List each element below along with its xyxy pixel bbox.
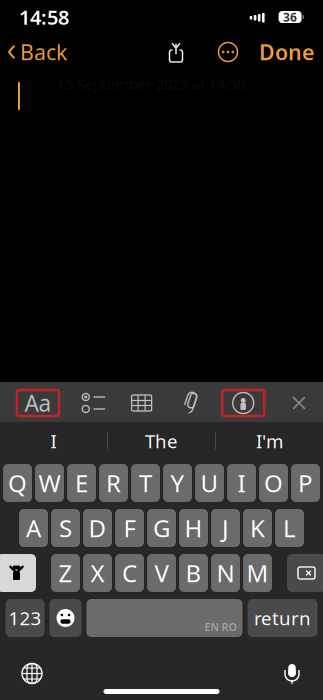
button[interactable]: Share bbox=[157, 36, 195, 68]
staticText: Done bbox=[259, 38, 314, 66]
button[interactable]: B bbox=[179, 554, 208, 592]
staticText: H bbox=[184, 512, 202, 544]
button[interactable]: Q bbox=[3, 464, 32, 502]
button[interactable]: Y bbox=[163, 464, 192, 502]
button[interactable]: Z bbox=[51, 554, 80, 592]
button[interactable]: Done bbox=[259, 30, 323, 74]
button[interactable]: return bbox=[247, 599, 317, 637]
button[interactable]: Table bbox=[129, 391, 155, 415]
button[interactable]: H bbox=[179, 509, 208, 547]
staticText: K bbox=[250, 512, 265, 544]
staticText: I bbox=[237, 467, 245, 499]
staticText: return bbox=[254, 606, 311, 630]
button[interactable]: Emoji bbox=[49, 599, 81, 637]
staticText: G bbox=[153, 512, 170, 544]
staticText: N bbox=[216, 557, 234, 589]
button[interactable]: K bbox=[243, 509, 272, 547]
button[interactable]: V bbox=[147, 554, 176, 592]
staticText: 14:58 bbox=[19, 4, 69, 30]
button[interactable]: T bbox=[131, 464, 160, 502]
button[interactable]: G bbox=[147, 509, 176, 547]
button[interactable]: N bbox=[211, 554, 240, 592]
button[interactable]: L bbox=[275, 509, 304, 547]
button[interactable]: S bbox=[51, 509, 80, 547]
button[interactable]: Space bbox=[86, 599, 242, 637]
button[interactable]: Shift bbox=[0, 554, 36, 592]
staticText: P bbox=[298, 467, 313, 499]
staticText: X bbox=[90, 557, 104, 589]
staticText: Q bbox=[8, 467, 27, 499]
staticText: W bbox=[38, 467, 60, 499]
staticText: B bbox=[185, 557, 201, 589]
staticText: M bbox=[246, 557, 268, 589]
button[interactable]: I'm bbox=[216, 422, 323, 460]
staticText: Aa bbox=[24, 388, 51, 418]
staticText: C bbox=[122, 557, 137, 589]
button[interactable]: Delete bbox=[287, 554, 323, 592]
button[interactable]: W bbox=[35, 464, 64, 502]
button[interactable]: U bbox=[195, 464, 224, 502]
staticText: J bbox=[222, 512, 229, 544]
button[interactable]: M bbox=[243, 554, 272, 592]
staticText: 15 September 2025 at 14:58 bbox=[57, 74, 245, 93]
button[interactable]: I bbox=[0, 422, 107, 460]
staticText: The bbox=[145, 429, 178, 453]
staticText: U bbox=[200, 467, 218, 499]
staticText: V bbox=[154, 557, 168, 589]
staticText: Back bbox=[20, 38, 67, 66]
staticText: L bbox=[283, 512, 296, 544]
button[interactable]: Close keyboard bbox=[286, 391, 312, 415]
staticText: Z bbox=[58, 557, 72, 589]
staticText: R bbox=[106, 467, 121, 499]
staticText: D bbox=[88, 512, 106, 544]
button[interactable]: O bbox=[259, 464, 288, 502]
button[interactable]: F bbox=[115, 509, 144, 547]
button[interactable]: D bbox=[83, 509, 112, 547]
button[interactable]: I bbox=[227, 464, 256, 502]
button[interactable]: More bbox=[213, 35, 243, 69]
button[interactable]: Back bbox=[0, 30, 67, 74]
button[interactable]: Next keyboard bbox=[11, 652, 53, 694]
staticText: T bbox=[139, 467, 152, 499]
button[interactable]: X bbox=[83, 554, 112, 592]
button[interactable]: The bbox=[108, 422, 215, 460]
button[interactable]: E bbox=[67, 464, 96, 502]
button[interactable]: J bbox=[211, 509, 240, 547]
button[interactable]: A bbox=[19, 509, 48, 547]
button[interactable]: R bbox=[99, 464, 128, 502]
button[interactable]: P bbox=[291, 464, 320, 502]
staticText: S bbox=[59, 512, 72, 544]
button[interactable]: 123 bbox=[5, 599, 44, 637]
staticText: EN RO bbox=[204, 620, 236, 634]
button[interactable]: Markup bbox=[222, 390, 264, 416]
button[interactable]: Aa bbox=[17, 390, 59, 416]
staticText: 36 bbox=[283, 9, 297, 25]
staticText: A bbox=[26, 512, 41, 544]
button[interactable]: Attach bbox=[176, 390, 200, 416]
button[interactable]: C bbox=[115, 554, 144, 592]
staticText: I'm bbox=[256, 429, 283, 453]
staticText: 123 bbox=[8, 606, 41, 630]
staticText: E bbox=[75, 467, 88, 499]
staticText: Y bbox=[170, 467, 184, 499]
staticText: I bbox=[50, 429, 56, 453]
button[interactable]: Dictation bbox=[272, 651, 312, 695]
button[interactable]: Checklist bbox=[81, 391, 107, 415]
staticText: O bbox=[264, 467, 283, 499]
staticText: F bbox=[123, 512, 135, 544]
